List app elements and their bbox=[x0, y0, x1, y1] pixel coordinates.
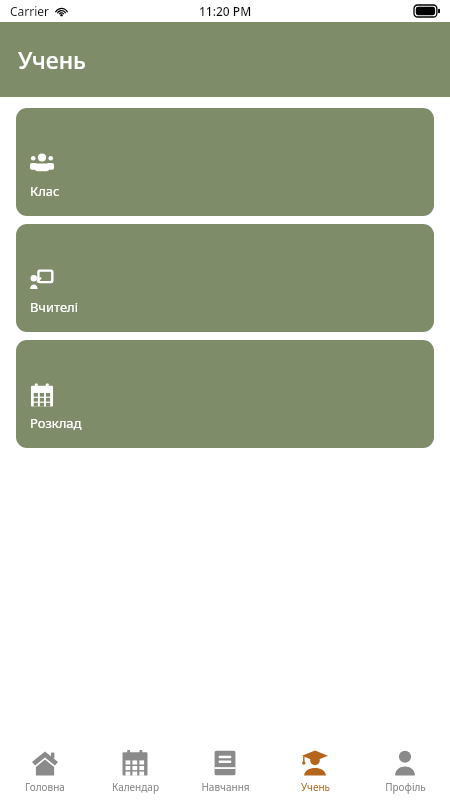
staticText: Carrier bbox=[10, 3, 50, 19]
button[interactable]: Календар bbox=[90, 742, 180, 800]
button[interactable]: Клас bbox=[16, 108, 434, 216]
staticText: Вчителі bbox=[30, 298, 79, 316]
button[interactable]: Розклад bbox=[16, 340, 434, 448]
button[interactable]: Вчителі bbox=[16, 224, 434, 332]
staticText: Навчання bbox=[201, 780, 250, 794]
button[interactable]: Профіль bbox=[360, 742, 450, 800]
staticText: Учень bbox=[301, 780, 330, 794]
button[interactable]: Учень bbox=[270, 742, 360, 800]
staticText: Розклад bbox=[30, 414, 82, 432]
staticText: Головна bbox=[25, 780, 65, 794]
staticText: Клас bbox=[30, 182, 60, 200]
button[interactable]: Навчання bbox=[180, 742, 270, 800]
staticText: Учень bbox=[18, 44, 86, 75]
staticText: Профіль bbox=[385, 780, 426, 794]
staticText: Календар bbox=[112, 780, 159, 794]
button[interactable]: Головна bbox=[0, 742, 90, 800]
staticText: 11:20 PM bbox=[199, 3, 252, 19]
